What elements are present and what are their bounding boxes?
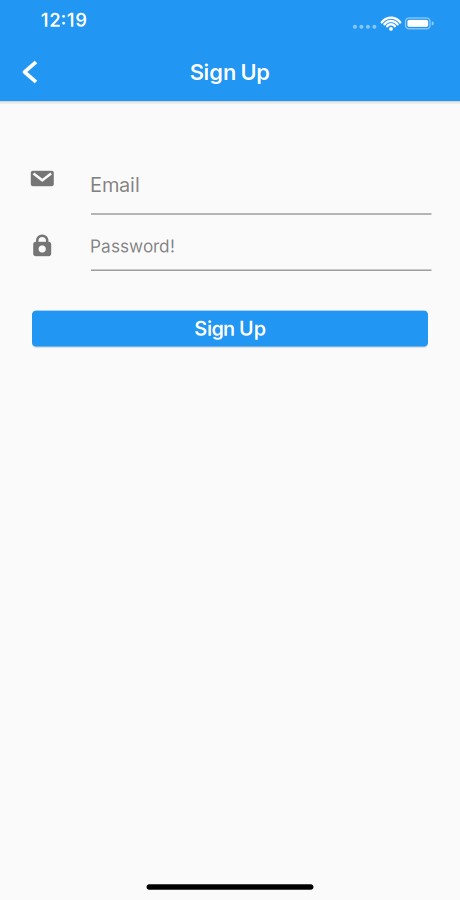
- textField[interactable]: Password!: [91, 225, 431, 271]
- staticText: Password!: [90, 236, 175, 257]
- staticText: Email: [90, 172, 140, 197]
- button[interactable]: Sign Up: [32, 311, 428, 347]
- staticText: Sign Up: [194, 317, 266, 341]
- staticText: 12:19: [41, 9, 87, 31]
- textField[interactable]: Email: [91, 165, 431, 215]
- button[interactable]: Back: [8, 50, 52, 94]
- staticText: Sign Up: [190, 59, 270, 85]
